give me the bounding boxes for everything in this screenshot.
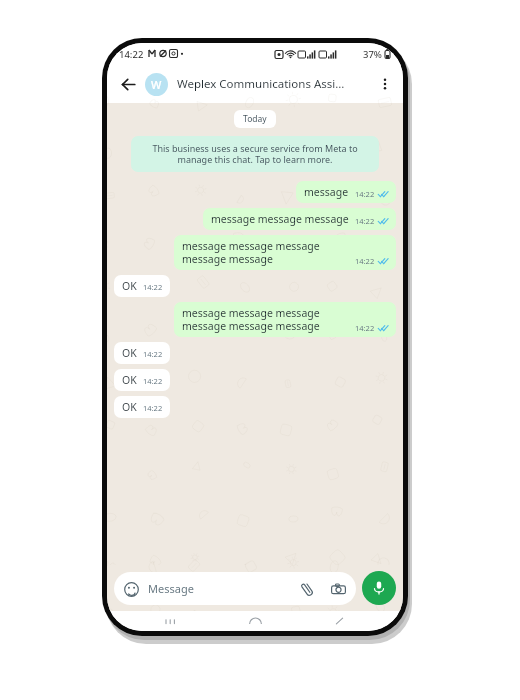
button[interactable]: Back — [319, 612, 359, 630]
staticText: Message — [148, 581, 194, 596]
staticText: message — [304, 185, 349, 199]
button[interactable]: More options — [373, 72, 397, 96]
button[interactable]: Back — [115, 71, 141, 97]
staticText: 37% — [363, 48, 382, 61]
staticText: message message message message message … — [182, 306, 349, 333]
button[interactable]: OK — [114, 342, 170, 364]
button[interactable]: Attach — [298, 580, 316, 598]
staticText: 14:22 — [143, 349, 163, 359]
button[interactable]: message message message message message — [174, 235, 396, 270]
staticText: OK — [122, 279, 137, 293]
staticText: Today — [243, 113, 267, 125]
staticText: W — [151, 77, 162, 92]
button[interactable]: Voice message — [362, 571, 396, 605]
button[interactable]: Home — [235, 612, 275, 630]
staticText: 14:22 — [355, 189, 375, 199]
staticText: 14:22 — [119, 48, 144, 61]
button[interactable]: message message message message message … — [174, 302, 396, 337]
staticText: 14:22 — [143, 403, 163, 413]
staticText: 14:22 — [143, 376, 163, 386]
button[interactable]: Emoji — [114, 572, 356, 605]
staticText: 14:22 — [143, 282, 163, 292]
staticText: 14:22 — [355, 256, 375, 266]
staticText: Weplex Communications Assi… — [177, 76, 345, 92]
staticText: OK — [122, 400, 137, 414]
button[interactable]: W — [145, 65, 373, 103]
button[interactable]: Today — [234, 110, 276, 128]
button[interactable]: OK — [114, 369, 170, 391]
staticText: message message message — [211, 212, 349, 226]
button[interactable]: Recents — [151, 612, 191, 630]
staticText: 14:22 — [355, 323, 375, 333]
button[interactable]: message message message — [203, 208, 396, 230]
button[interactable]: Emoji — [123, 581, 139, 597]
button[interactable]: message — [296, 181, 396, 203]
button[interactable]: OK — [114, 396, 170, 418]
button[interactable]: Camera — [329, 580, 347, 598]
staticText: OK — [122, 373, 137, 387]
staticText: 14:22 — [355, 216, 375, 226]
staticText: message message message message message — [182, 239, 349, 266]
button[interactable]: OK — [114, 275, 170, 297]
button[interactable]: This business uses a secure service from… — [131, 136, 379, 172]
staticText: OK — [122, 346, 137, 360]
staticText: This business uses a secure service from… — [141, 142, 369, 166]
